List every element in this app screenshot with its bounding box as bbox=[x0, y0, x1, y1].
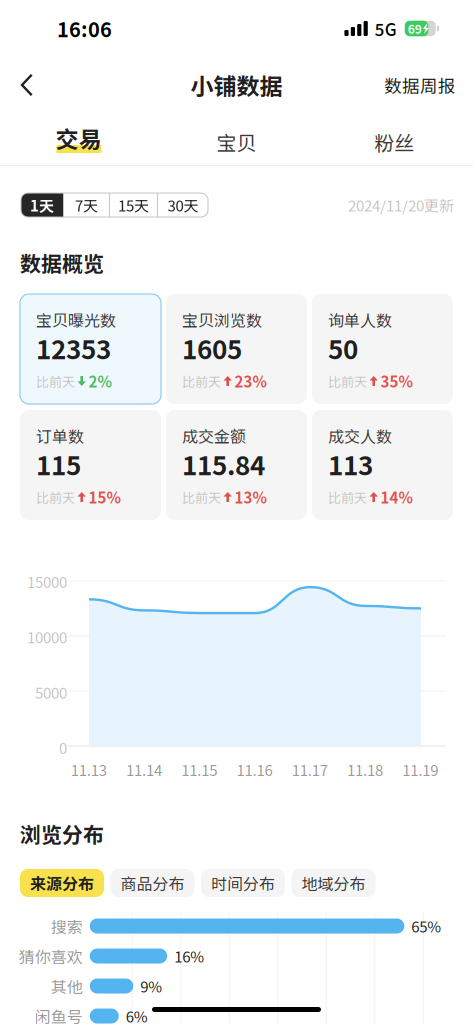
staticText: 成交金额 bbox=[182, 424, 246, 447]
staticText: 9% bbox=[140, 975, 162, 997]
staticText: 5000 bbox=[35, 681, 67, 703]
staticText: 比前天 bbox=[328, 488, 367, 506]
staticText: 6% bbox=[126, 1005, 148, 1024]
button[interactable]: 宝贝 bbox=[158, 126, 315, 158]
button[interactable]: 粉丝 bbox=[315, 126, 473, 158]
staticText: 115.84 bbox=[182, 445, 265, 483]
staticText: 2% bbox=[88, 370, 111, 392]
staticText: 65% bbox=[411, 915, 441, 937]
button[interactable]: 数据周报 bbox=[384, 63, 456, 107]
staticText: 数据周报 bbox=[384, 72, 456, 98]
staticText: 地域分布 bbox=[301, 871, 365, 895]
staticText: 宝贝浏览数 bbox=[182, 308, 262, 331]
staticText: 交易 bbox=[56, 121, 102, 155]
button[interactable]: 15天 bbox=[110, 193, 157, 217]
button[interactable]: 宝贝浏览数 bbox=[166, 294, 307, 404]
staticText: 11.16 bbox=[236, 759, 272, 780]
staticText: 宝贝曝光数 bbox=[36, 308, 116, 331]
staticText: 1605 bbox=[182, 329, 242, 367]
staticText: 15% bbox=[88, 486, 120, 508]
staticText: 113 bbox=[328, 445, 373, 483]
staticText: 12353 bbox=[36, 329, 111, 367]
button[interactable]: 地域分布 bbox=[291, 869, 375, 897]
staticText: 比前天 bbox=[328, 372, 367, 390]
staticText: 30天 bbox=[167, 194, 198, 216]
staticText: 小铺数据 bbox=[190, 68, 282, 102]
button[interactable]: 时间分布 bbox=[201, 869, 285, 897]
button[interactable]: 1天 bbox=[21, 193, 63, 217]
staticText: 5G bbox=[375, 16, 397, 41]
button[interactable]: 返回 bbox=[7, 63, 47, 107]
staticText: 粉丝 bbox=[374, 127, 414, 156]
staticText: 11.14 bbox=[126, 759, 162, 780]
staticText: 16% bbox=[174, 945, 204, 967]
button[interactable]: 询单人数 bbox=[312, 294, 453, 404]
staticText: 搜索 bbox=[51, 914, 83, 938]
staticText: 闲鱼号 bbox=[35, 1004, 83, 1024]
staticText: 比前天 bbox=[182, 488, 221, 506]
staticText: 15天 bbox=[118, 194, 149, 216]
staticText: 1天 bbox=[30, 194, 54, 216]
button[interactable]: 成交金额 bbox=[166, 410, 307, 520]
button[interactable]: 30天 bbox=[158, 193, 208, 217]
staticText: 35% bbox=[380, 370, 412, 392]
staticText: 11.17 bbox=[292, 759, 328, 780]
button[interactable]: 宝贝曝光数 bbox=[20, 294, 161, 404]
staticText: 询单人数 bbox=[328, 308, 392, 331]
staticText: 宝贝 bbox=[216, 127, 256, 156]
staticText: 2024/11/20更新 bbox=[348, 194, 454, 216]
button[interactable]: 7天 bbox=[64, 193, 109, 217]
staticText: 商品分布 bbox=[120, 871, 184, 895]
staticText: 11.19 bbox=[402, 759, 438, 780]
staticText: 0 bbox=[59, 737, 67, 758]
staticText: 16:06 bbox=[57, 14, 112, 43]
button[interactable]: 成交人数 bbox=[312, 410, 453, 520]
staticText: 比前天 bbox=[36, 372, 75, 390]
staticText: 7天 bbox=[75, 194, 98, 216]
staticText: 14% bbox=[380, 486, 412, 508]
staticText: 浏览分布 bbox=[20, 818, 104, 849]
staticText: 10000 bbox=[27, 626, 67, 648]
staticText: 数据概览 bbox=[20, 247, 104, 278]
staticText: 其他 bbox=[51, 974, 83, 998]
staticText: 115 bbox=[36, 445, 81, 483]
staticText: 来源分布 bbox=[30, 871, 94, 895]
staticText: 15000 bbox=[27, 571, 67, 592]
staticText: 13% bbox=[234, 486, 266, 508]
button[interactable]: 来源分布 bbox=[20, 869, 104, 897]
staticText: 猜你喜欢 bbox=[19, 944, 83, 968]
staticText: 比前天 bbox=[182, 372, 221, 390]
staticText: 11.13 bbox=[71, 759, 107, 780]
staticText: 50 bbox=[328, 329, 358, 367]
button[interactable]: 订单数 bbox=[20, 410, 161, 520]
staticText: 23% bbox=[234, 370, 266, 392]
staticText: 时间分布 bbox=[211, 871, 275, 895]
staticText: 69 bbox=[408, 20, 422, 37]
button[interactable]: 商品分布 bbox=[110, 869, 194, 897]
staticText: 比前天 bbox=[36, 488, 75, 506]
staticText: 成交人数 bbox=[328, 424, 392, 447]
button[interactable]: 交易 bbox=[0, 126, 158, 158]
staticText: 11.18 bbox=[347, 759, 383, 780]
staticText: 订单数 bbox=[36, 424, 84, 447]
staticText: 11.15 bbox=[181, 759, 217, 780]
